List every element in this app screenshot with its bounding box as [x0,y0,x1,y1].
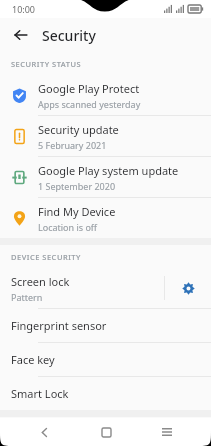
staticText: Screen lock [11,274,70,289]
staticText: Location is off [38,221,98,233]
button[interactable]: Screen lock settings [165,268,211,308]
staticText: Pattern [11,291,43,303]
staticText: Fingerprint sensor [11,318,107,333]
button[interactable]: Face key [0,343,211,376]
staticText: SECURITY STATUS [11,59,82,69]
staticText: Apps scanned yesterday [38,98,141,110]
staticText: DEVICE SECURITY [11,252,81,262]
staticText: 10:00 [12,3,36,15]
staticText: Face key [11,352,55,367]
button[interactable]: Recents [150,418,184,446]
button[interactable]: Google Play Protect [0,75,211,115]
staticText: Security update [38,122,119,137]
staticText: 1 September 2020 [38,180,116,192]
button[interactable]: Google Play system update [0,157,211,197]
button[interactable]: Fingerprint sensor [0,309,211,342]
button[interactable]: Security update [0,116,211,156]
button[interactable]: Back [27,418,61,446]
button[interactable]: Find My Device [0,198,211,238]
staticText: Smart Lock [11,386,69,401]
button[interactable]: Screen lock [0,274,164,303]
staticText: Find My Device [38,204,116,219]
staticText: Google Play Protect [38,81,140,96]
button[interactable]: Smart Lock [0,377,211,410]
button[interactable]: Home [89,418,123,446]
staticText: Security [42,26,96,45]
staticText: 5 February 2021 [38,139,107,151]
staticText: Google Play system update [38,163,179,178]
button[interactable]: Back [8,22,34,48]
